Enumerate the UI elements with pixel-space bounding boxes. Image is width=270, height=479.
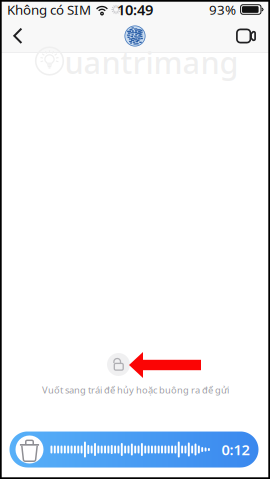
staticText: 0:12 bbox=[221, 440, 249, 459]
staticText: Vuốt sang trái để hủy hoặc buông ra để g… bbox=[42, 384, 229, 396]
staticText: uantrimang bbox=[64, 42, 238, 82]
button[interactable]: Conversation profile bbox=[118, 19, 152, 52]
staticText: 93% bbox=[209, 1, 236, 18]
staticText: Không có SIM bbox=[7, 1, 91, 18]
staticText: 10:49 bbox=[117, 0, 153, 19]
button[interactable]: Back bbox=[1, 19, 35, 52]
button[interactable]: Cancel recording bbox=[13, 431, 45, 467]
button[interactable]: Video call bbox=[229, 19, 263, 52]
